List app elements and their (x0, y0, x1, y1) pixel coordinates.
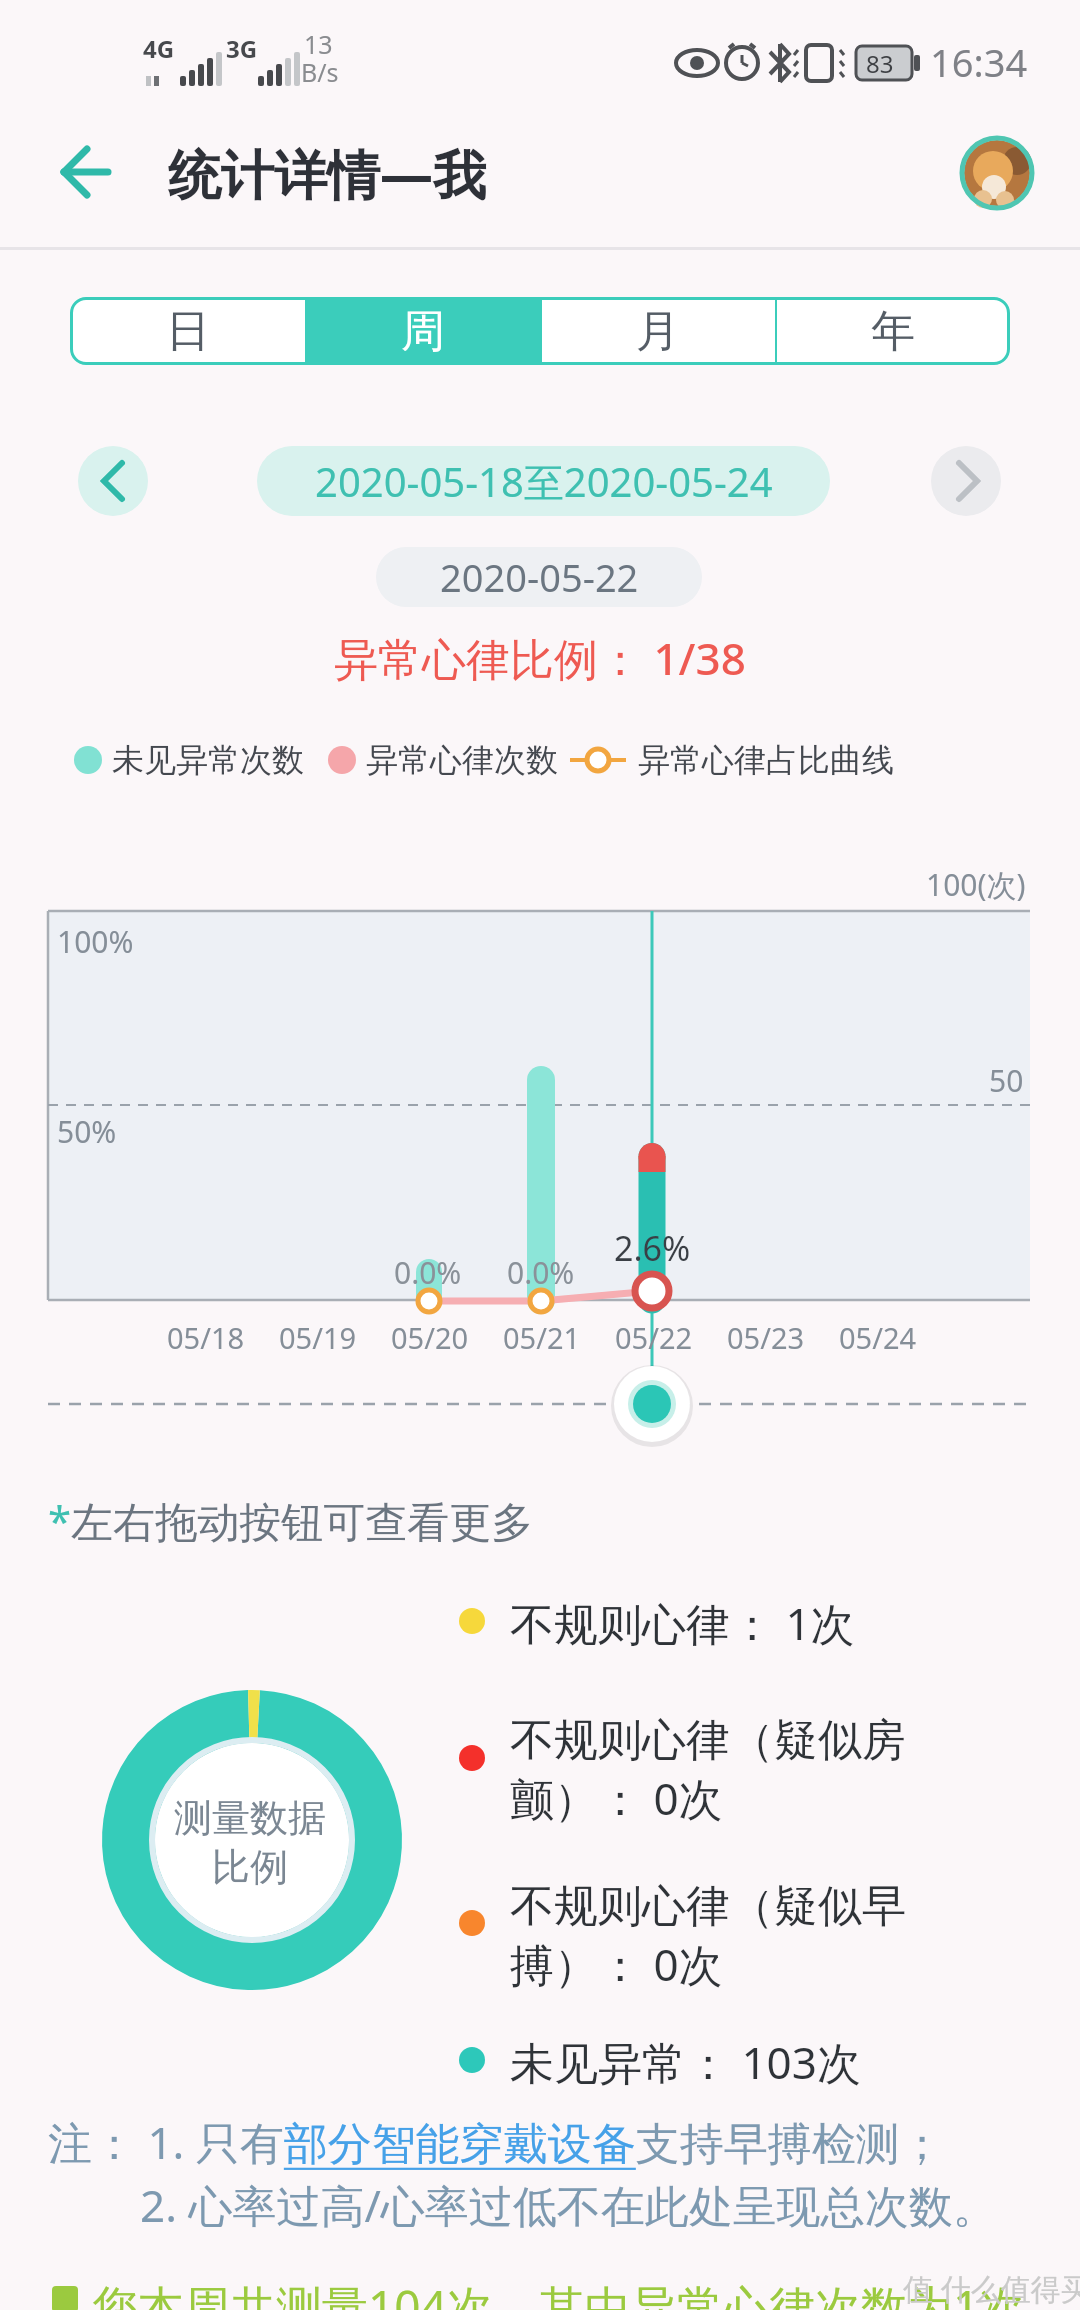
staticText: 年 (871, 304, 915, 359)
staticText: 异常心律比例： 1/38 (334, 628, 746, 688)
staticText: 100(次) (926, 864, 1026, 905)
button[interactable] (615, 1367, 689, 1441)
staticText: 异常心律占比曲线 (638, 740, 894, 780)
staticText: 05/18 (167, 1318, 245, 1357)
button[interactable]: 2020-05-18至2020-05-24 (257, 446, 830, 516)
staticText: 100% (57, 921, 134, 962)
staticText: 月 (636, 304, 680, 359)
staticText: 05/23 (727, 1318, 805, 1357)
staticText: 05/21 (503, 1318, 581, 1357)
staticText: 2020-05-18至2020-05-24 (315, 454, 773, 509)
button[interactable]: 周 (305, 297, 540, 365)
staticText: 2020-05-22 (440, 551, 639, 603)
button[interactable]: 月 (540, 297, 775, 365)
staticText: 日 (166, 304, 210, 359)
staticText: 异常心律次数 (366, 740, 558, 780)
staticText: 0.0% (394, 1252, 462, 1293)
staticText: 注： 1. 只有部分智能穿戴设备支持早搏检测； (48, 2112, 944, 2172)
staticText: 比例 (212, 1843, 288, 1891)
staticText: 周 (401, 304, 445, 359)
button[interactable]: 年 (775, 297, 1010, 365)
staticText: 83 (866, 47, 894, 80)
staticText: 不规则心律： 1次 (510, 1593, 855, 1653)
button[interactable] (931, 446, 1001, 516)
staticText: 2. 心率过高/心率过低不在此处呈现总次数。 (140, 2175, 997, 2235)
staticText: 05/22 (615, 1318, 693, 1357)
staticText: 50% (57, 1111, 117, 1152)
staticText: 50 (989, 1060, 1024, 1101)
staticText: 未见异常： 103次 (510, 2032, 861, 2092)
staticText: 您本周共测量104次，其中异常心律次数为1次 (92, 2275, 1026, 2310)
button[interactable] (44, 136, 120, 212)
staticText: 测量数据 (174, 1794, 326, 1842)
staticText: B/s (301, 55, 339, 89)
staticText: 值 什么值得买 (903, 2268, 1080, 2309)
staticText: 不规则心律（疑似房 颤）： 0次 (510, 1713, 906, 1828)
staticText: *左右拖动按钮可查看更多 (48, 1492, 534, 1549)
button[interactable] (276, 2112, 642, 2170)
staticText: 05/24 (839, 1318, 917, 1357)
staticText: 0.0% (507, 1252, 575, 1293)
button[interactable]: 2020-05-22 (376, 547, 702, 607)
button[interactable] (78, 446, 148, 516)
staticText: 4G (143, 32, 175, 65)
button[interactable] (960, 136, 1034, 210)
staticText: 3G (226, 32, 258, 65)
staticText: 16:34 (930, 36, 1028, 88)
staticText: 统计详情—我 (168, 137, 486, 209)
button[interactable]: 日 (70, 297, 305, 365)
staticText: 05/19 (279, 1318, 357, 1357)
staticText: 不规则心律（疑似早 搏）： 0次 (510, 1879, 906, 1994)
staticText: 05/20 (391, 1318, 469, 1357)
staticText: 13 (304, 27, 333, 61)
staticText: 未见异常次数 (112, 740, 304, 780)
staticText: 2.6% (614, 1225, 691, 1271)
